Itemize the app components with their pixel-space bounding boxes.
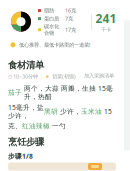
staticText: 两个，大蒜 两瓣，生抽 15毫升，热醋 xyxy=(24,84,113,101)
staticText: 食材清单 xyxy=(8,59,44,71)
staticText: 步骤1/8 xyxy=(8,152,33,160)
staticText: 碳水化合物 xyxy=(44,23,59,36)
staticText: 茄子 xyxy=(8,88,24,96)
staticText: 7克 xyxy=(65,15,73,22)
staticText: ⏱ 10–30分钟 xyxy=(8,73,38,80)
staticText: 低心推荐、最低卡路里的一道菜! xyxy=(19,41,90,48)
staticText: | xyxy=(40,73,43,80)
staticText: 少许， xyxy=(60,107,81,116)
staticText: 红油辣椒 xyxy=(22,122,52,130)
staticText: 脂肪 xyxy=(44,7,54,14)
staticText: 黑胡 xyxy=(44,107,60,116)
staticText: 15毫升，盐 少许， xyxy=(8,103,44,120)
staticText: 16克 xyxy=(65,7,76,14)
staticText: 切菜(初级) xyxy=(52,73,76,80)
button[interactable]: 加入采购清单 xyxy=(82,71,116,80)
staticText: 千卡 xyxy=(101,26,111,33)
staticText: 15 xyxy=(104,107,112,116)
staticText: ★ xyxy=(45,73,50,79)
staticText: 烹饪步骤 xyxy=(8,136,44,148)
staticText: 一勺 xyxy=(52,122,66,130)
staticText: 玉米油 xyxy=(81,107,104,116)
staticText: 241 xyxy=(95,10,116,26)
staticText: 17克 xyxy=(65,26,76,33)
staticText: 加入采购清单 xyxy=(84,72,114,79)
staticText: 克、 xyxy=(8,122,22,130)
staticText: 蛋白质 xyxy=(44,15,59,22)
